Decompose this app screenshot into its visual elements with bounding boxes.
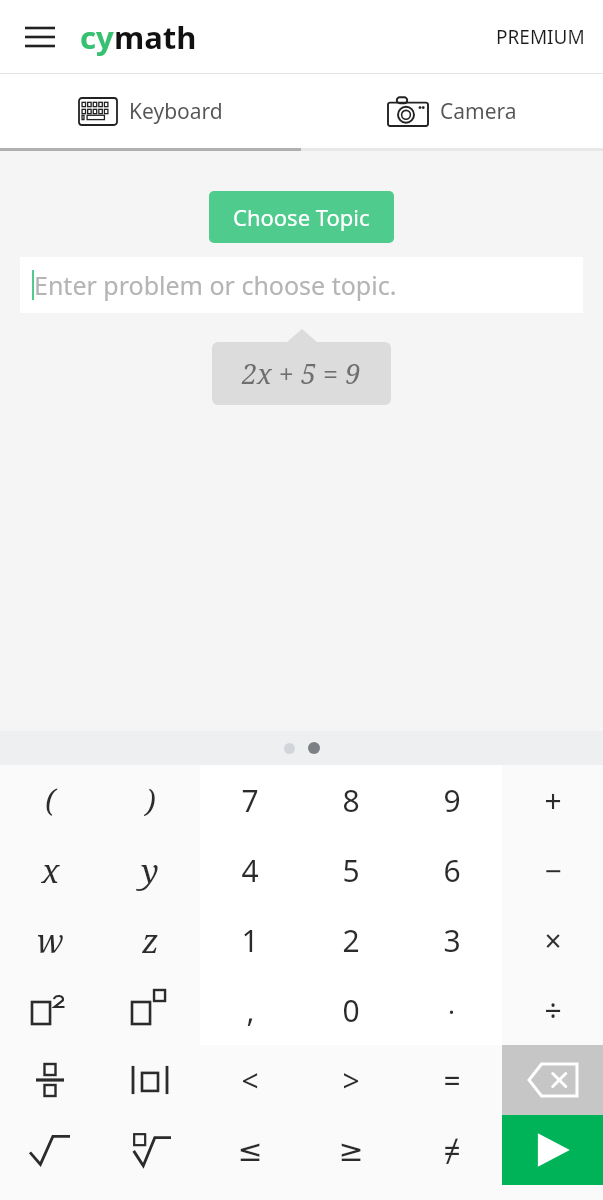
- staticText: Enter problem or choose topic.: [34, 268, 397, 302]
- staticText: x: [41, 848, 60, 893]
- button[interactable]: <: [200, 1045, 300, 1115]
- staticText: 8: [342, 780, 360, 821]
- button[interactable]: −: [502, 835, 603, 905]
- staticText: +: [544, 780, 562, 821]
- staticText: ,: [246, 990, 255, 1031]
- button[interactable]: Camera: [301, 74, 603, 148]
- button[interactable]: Absolute value: [100, 1045, 200, 1115]
- button[interactable]: Square root: [0, 1115, 100, 1185]
- staticText: 3: [443, 920, 461, 961]
- staticText: math: [114, 16, 197, 58]
- staticText: ≤: [237, 1133, 263, 1168]
- button[interactable]: ≤: [200, 1115, 300, 1185]
- staticText: Camera: [440, 97, 517, 126]
- button[interactable]: Power: [100, 975, 200, 1045]
- button[interactable]: Square: [0, 975, 100, 1045]
- button[interactable]: Solve: [502, 1115, 603, 1185]
- staticText: Choose Topic: [233, 202, 370, 232]
- staticText: PREMIUM: [496, 24, 585, 50]
- button[interactable]: 9: [401, 765, 502, 835]
- staticText: ): [145, 780, 156, 821]
- staticText: 1: [241, 920, 259, 961]
- staticText: z: [142, 918, 159, 963]
- button[interactable]: >: [300, 1045, 401, 1115]
- button[interactable]: Keyboard: [0, 74, 301, 148]
- button[interactable]: 7: [200, 765, 300, 835]
- staticText: 4: [241, 850, 259, 891]
- button[interactable]: 8: [300, 765, 401, 835]
- button[interactable]: PREMIUM: [488, 14, 593, 60]
- button[interactable]: z: [100, 905, 200, 975]
- button[interactable]: 2: [300, 905, 401, 975]
- button[interactable]: Enter problem or choose topic.: [20, 257, 583, 313]
- button[interactable]: Choose Topic: [209, 191, 394, 243]
- staticText: Keyboard: [129, 97, 223, 126]
- button[interactable]: 6: [401, 835, 502, 905]
- staticText: 2x + 5 = 9: [242, 355, 361, 392]
- staticText: 6: [443, 850, 461, 891]
- button[interactable]: (: [0, 765, 100, 835]
- button[interactable]: 2x + 5 = 9: [212, 342, 391, 405]
- button[interactable]: ≥: [300, 1115, 401, 1185]
- staticText: (: [45, 780, 56, 821]
- staticText: ≥: [338, 1133, 364, 1168]
- button[interactable]: 4: [200, 835, 300, 905]
- staticText: ×: [544, 920, 562, 961]
- staticText: ÷: [544, 990, 562, 1031]
- button[interactable]: w: [0, 905, 100, 975]
- staticText: <: [241, 1060, 259, 1101]
- staticText: w: [36, 918, 64, 963]
- button[interactable]: Nth root: [100, 1115, 200, 1185]
- button[interactable]: 1: [200, 905, 300, 975]
- staticText: 0: [342, 990, 360, 1031]
- staticText: 2: [342, 920, 360, 961]
- button[interactable]: +: [502, 765, 603, 835]
- staticText: 9: [443, 780, 461, 821]
- button[interactable]: ,: [200, 975, 300, 1045]
- button[interactable]: 3: [401, 905, 502, 975]
- button[interactable]: Backspace: [502, 1045, 603, 1115]
- staticText: ≠: [443, 1130, 461, 1171]
- staticText: 5: [342, 850, 360, 891]
- staticText: −: [544, 850, 562, 891]
- button[interactable]: ): [100, 765, 200, 835]
- button[interactable]: Fraction: [0, 1045, 100, 1115]
- button[interactable]: x: [0, 835, 100, 905]
- button[interactable]: 5: [300, 835, 401, 905]
- button[interactable]: ×: [502, 905, 603, 975]
- button[interactable]: ÷: [502, 975, 603, 1045]
- staticText: y: [141, 848, 159, 893]
- staticText: ·: [448, 993, 455, 1028]
- staticText: =: [443, 1060, 461, 1101]
- button[interactable]: ≠: [401, 1115, 502, 1185]
- staticText: 7: [241, 780, 259, 821]
- button[interactable]: y: [100, 835, 200, 905]
- button[interactable]: =: [401, 1045, 502, 1115]
- staticText: >: [342, 1060, 360, 1101]
- staticText: cy: [80, 16, 114, 58]
- button[interactable]: 0: [300, 975, 401, 1045]
- button[interactable]: ·: [401, 975, 502, 1045]
- button[interactable]: Menu: [14, 11, 66, 63]
